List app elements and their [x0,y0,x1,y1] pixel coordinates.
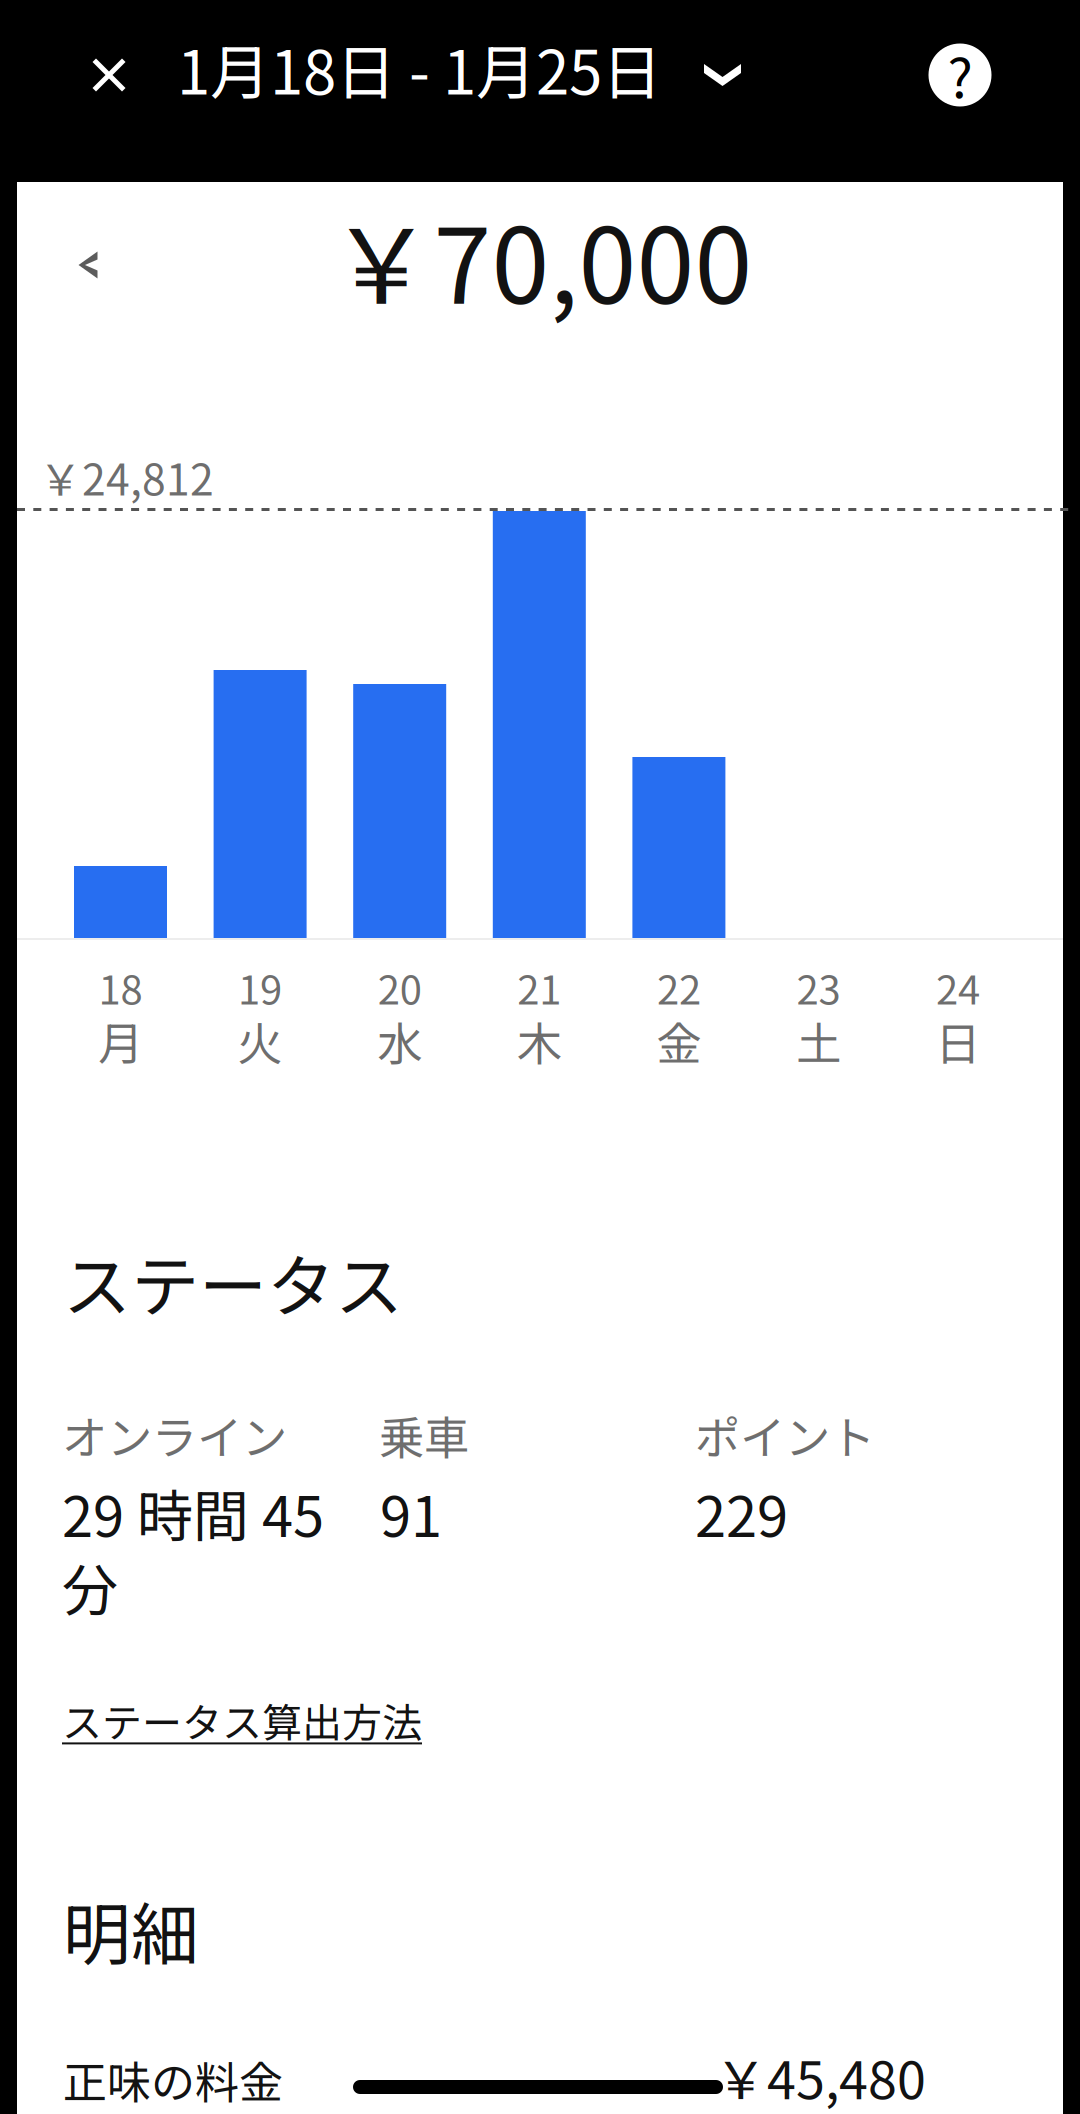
staticText: 水 [377,1008,422,1074]
staticText: 正味の料金 [63,2047,283,2111]
button[interactable]: 閉じる [66,32,152,118]
button[interactable]: ステータス算出方法 [62,1673,422,1767]
button[interactable]: ヘルプ [914,29,1006,121]
button[interactable]: 前の週 [45,222,131,308]
staticText: 24 [936,958,980,1016]
staticText: ステータス算出方法 [62,1691,422,1749]
staticText: ￥70,000 [329,183,752,334]
staticText: ポイント [695,1402,875,1468]
staticText: 分 [62,1546,118,1627]
staticText: 229 [695,1472,788,1553]
staticText: ? [947,36,972,114]
staticText: 20 [378,958,422,1016]
staticText: 乗車 [379,1402,469,1468]
button[interactable]: 1月18日 - 1月25日 [177,25,737,117]
staticText: 1月18日 - 1月25日 [177,25,662,112]
staticText: 91 [380,1472,442,1553]
staticText: 月 [98,1008,143,1074]
staticText: 23 [796,958,840,1016]
staticText: ￥24,812 [39,446,214,508]
staticText: 18 [98,958,142,1016]
staticText: 金 [656,1008,701,1074]
staticText: 土 [796,1008,841,1074]
staticText: 29 時間 45 [62,1472,324,1553]
staticText: 火 [238,1008,283,1074]
staticText: 19 [238,958,282,1016]
staticText: 22 [657,958,701,1016]
staticText: オンライン [62,1402,287,1468]
staticText: 明細 [63,1880,199,1979]
staticText: ステータス [63,1232,403,1331]
staticText: 木 [517,1008,562,1074]
staticText: 日 [936,1008,981,1074]
staticText: ￥45,480 [715,2039,926,2114]
staticText: 21 [517,958,561,1016]
